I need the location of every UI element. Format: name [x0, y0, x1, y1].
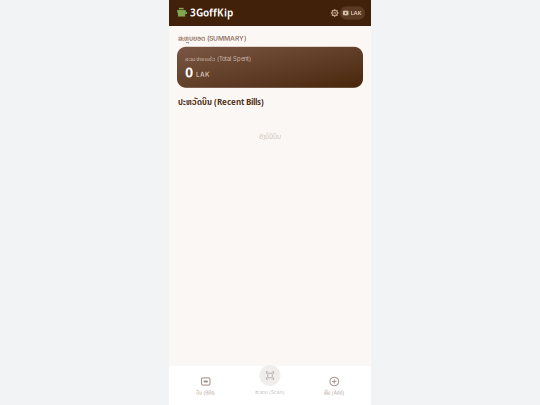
staticText: ຍັງບໍ່ມີບິນ: [259, 132, 281, 141]
staticText: LAK: [196, 71, 210, 77]
button[interactable]: ເພີ່ມ (Add): [303, 366, 371, 405]
staticText: LAK: [350, 9, 361, 17]
staticText: ປະຫວັດບິນ (Recent Bills): [178, 97, 264, 107]
staticText: ສະຫຼຸບຍອດ (SUMMARY): [178, 34, 246, 43]
staticText: ສະແກນ (Scan): [255, 389, 285, 396]
staticText: 3GoffKip: [190, 6, 233, 20]
staticText: ລວມຈ່າຍແລ້ວ (Total Spent): [185, 55, 251, 63]
button[interactable]: ສະແກນ (Scan): [236, 366, 303, 405]
staticText: ເພີ່ມ (Add): [324, 389, 345, 396]
staticText: 0: [185, 63, 193, 82]
staticText: ບິນ (Bills): [196, 389, 215, 396]
button[interactable]: LAK: [340, 6, 365, 20]
button[interactable]: Settings: [319, 3, 339, 23]
button[interactable]: ບິນ (Bills): [169, 366, 236, 405]
